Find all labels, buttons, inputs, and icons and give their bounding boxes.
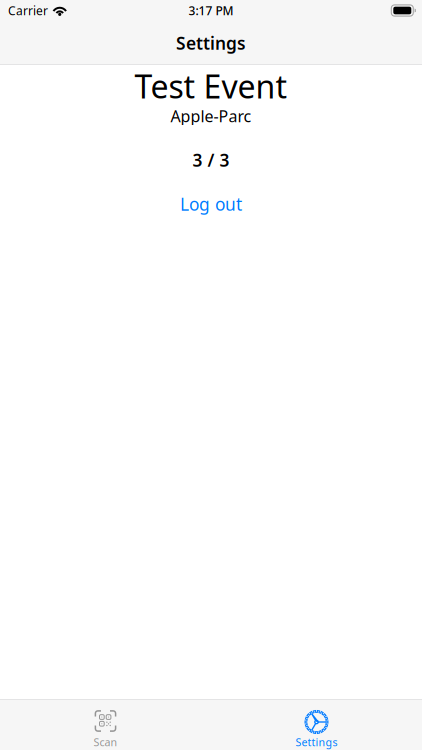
button[interactable]: Log out <box>0 195 422 213</box>
staticText: Test Event <box>134 65 287 107</box>
staticText: 3:17 PM <box>188 2 233 18</box>
staticText: Settings <box>295 735 337 749</box>
button[interactable]: Scan <box>0 699 211 750</box>
staticText: Carrier <box>8 2 48 18</box>
staticText: Settings <box>176 31 246 54</box>
button[interactable]: Settings <box>211 699 422 750</box>
staticText: 3 / 3 <box>192 148 229 171</box>
staticText: Log out <box>180 192 242 215</box>
staticText: Apple-Parc <box>170 105 251 127</box>
staticText: Scan <box>93 735 117 749</box>
